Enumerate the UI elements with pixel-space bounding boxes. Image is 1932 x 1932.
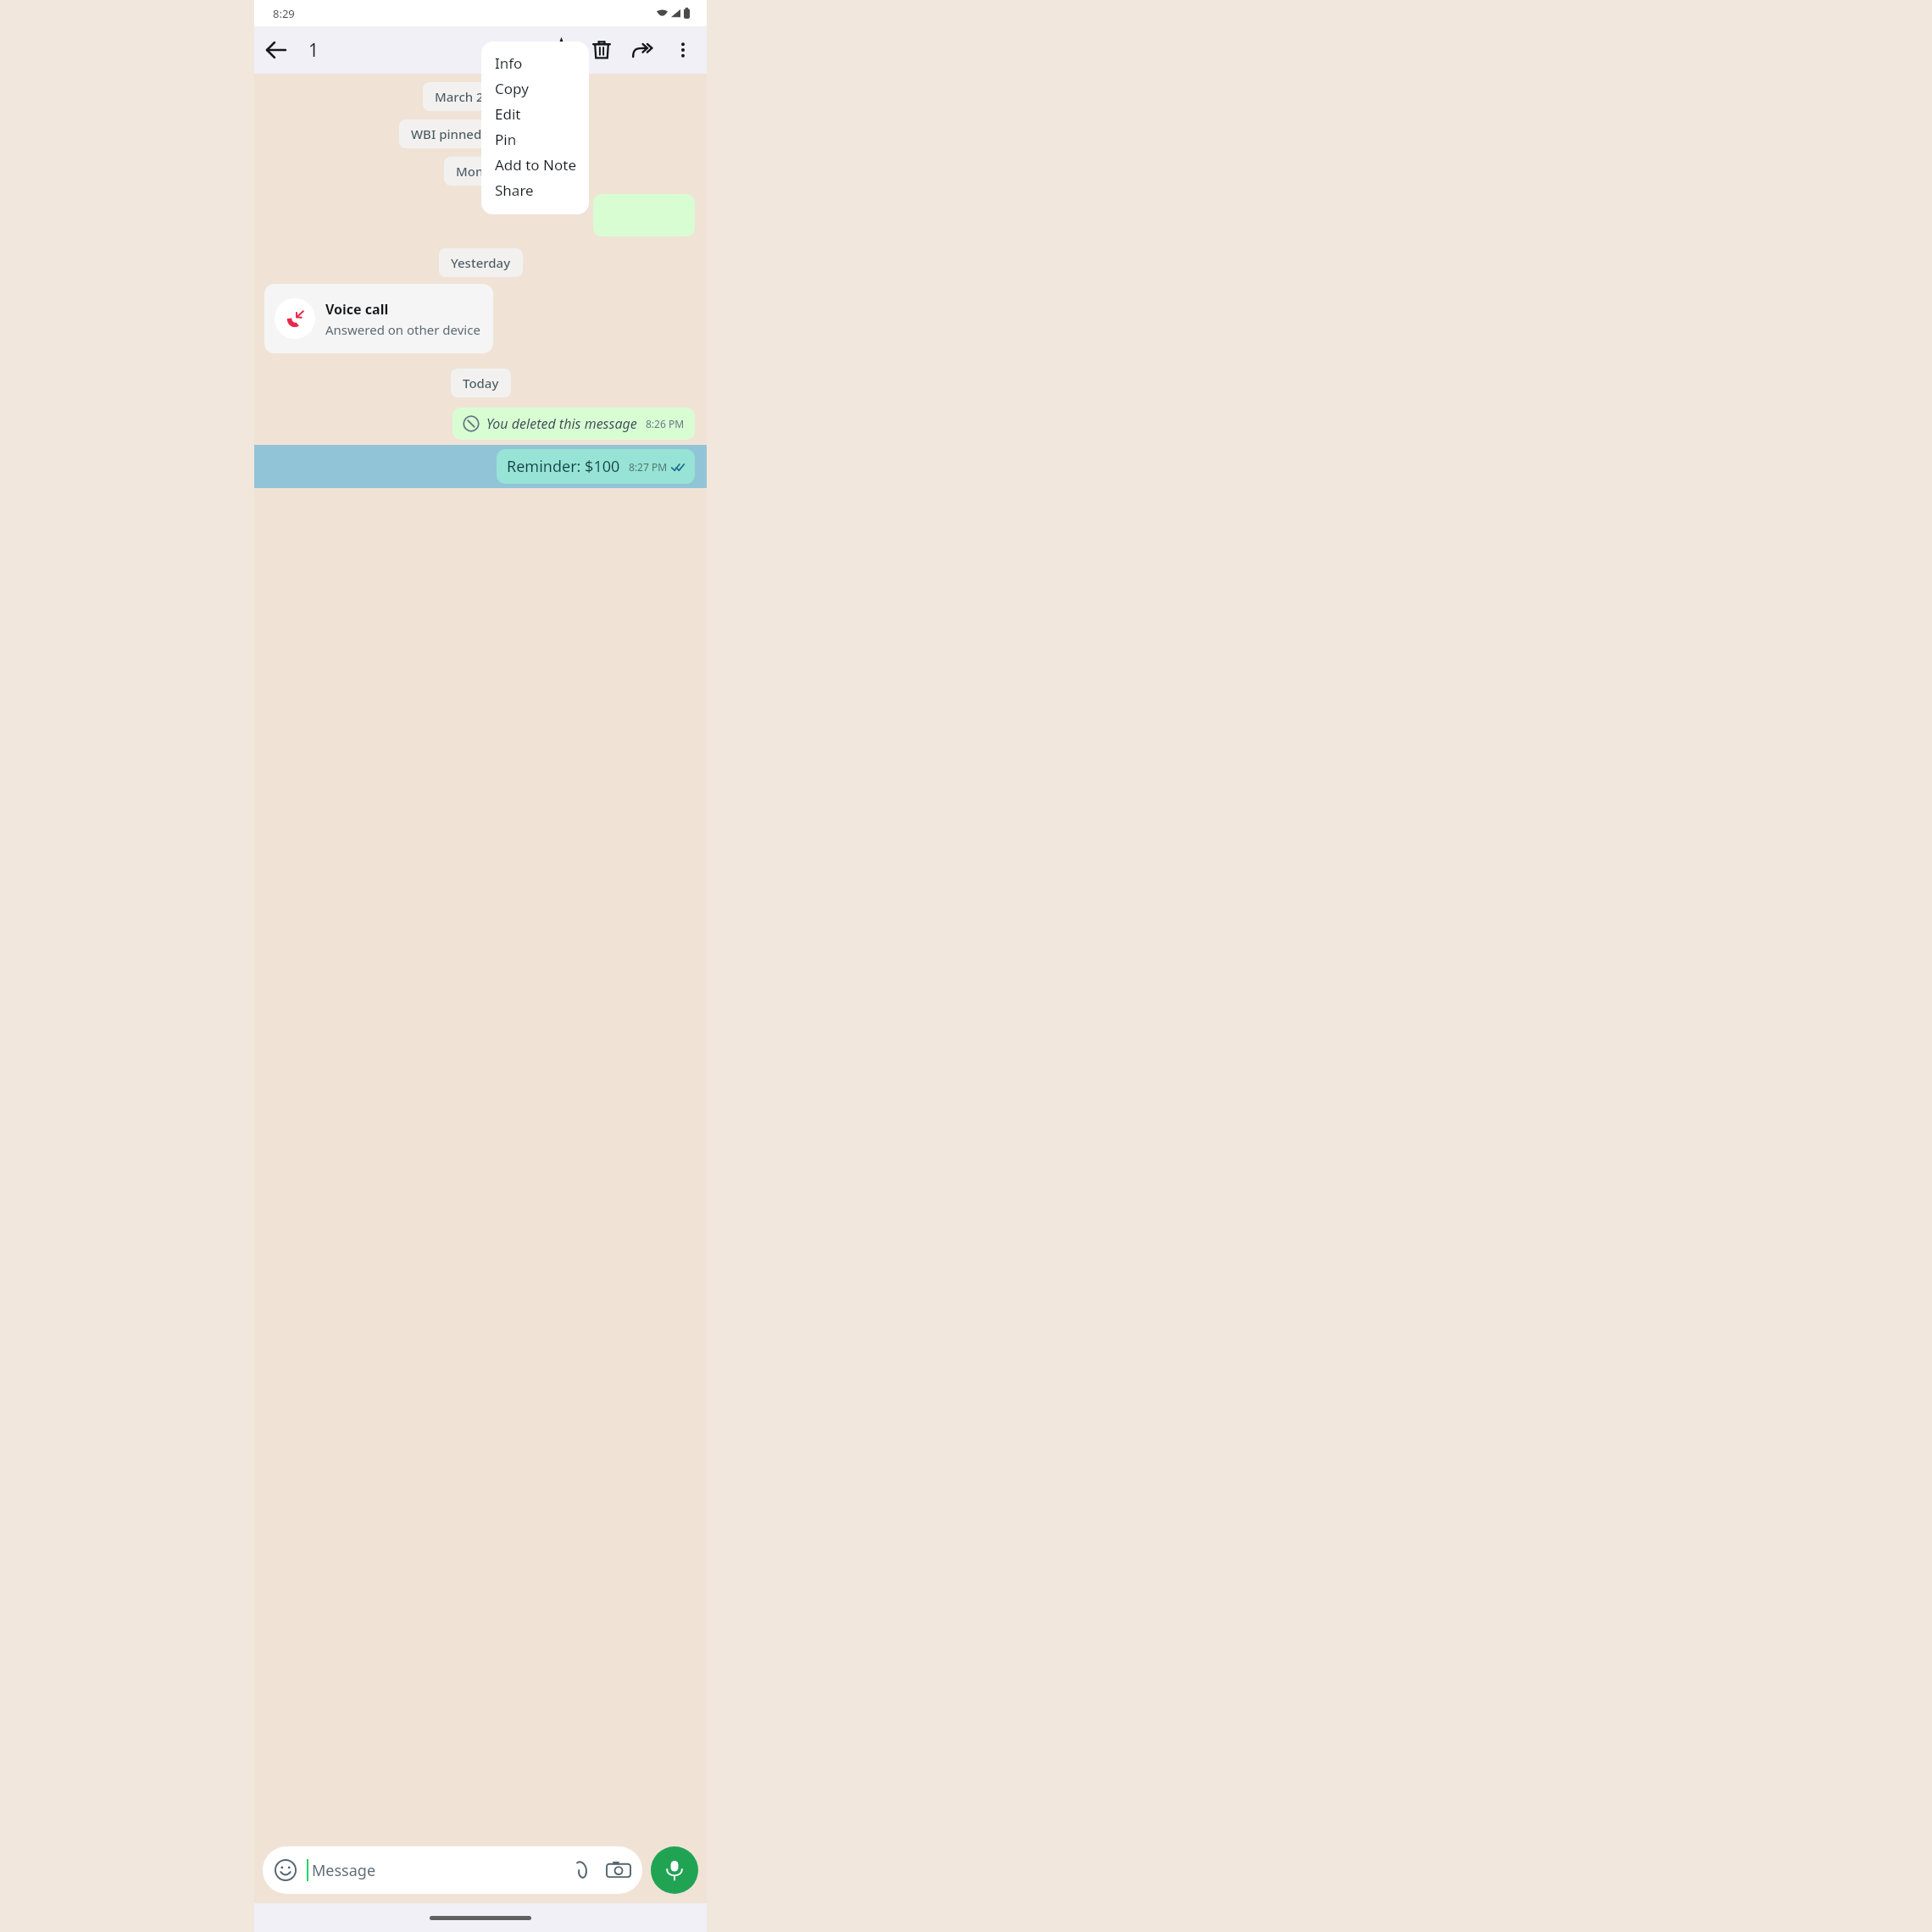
staticText: Info bbox=[495, 53, 523, 73]
button[interactable]: Message bbox=[263, 1846, 642, 1894]
button[interactable]: Share bbox=[481, 177, 589, 203]
button[interactable]: Pin bbox=[481, 126, 589, 152]
staticText: Add to Note bbox=[495, 155, 576, 175]
other: Attach bbox=[571, 1859, 593, 1881]
button[interactable]: More options bbox=[663, 30, 703, 70]
staticText: Answered on other device bbox=[325, 321, 480, 338]
button[interactable]: Delete bbox=[581, 30, 622, 70]
staticText: 8:29 bbox=[273, 6, 295, 21]
staticText: WBI pinned a message bbox=[411, 125, 550, 142]
staticText: March 24, 2025 bbox=[435, 88, 527, 105]
button[interactable]: Star bbox=[541, 30, 581, 70]
staticText: Reminder: $100 bbox=[507, 456, 620, 477]
staticText: Voice call bbox=[325, 300, 389, 319]
other: Camera bbox=[607, 1858, 630, 1882]
button[interactable]: Back bbox=[254, 28, 298, 72]
staticText: 8:27 PM bbox=[629, 460, 668, 474]
staticText: Share bbox=[495, 180, 534, 200]
staticText: Edit bbox=[495, 104, 521, 124]
button[interactable]: Copy bbox=[481, 75, 589, 101]
staticText: 1 bbox=[308, 38, 319, 63]
button[interactable]: Forward bbox=[622, 30, 663, 70]
staticText: 8:26 PM bbox=[646, 417, 685, 430]
button[interactable]: Info bbox=[481, 50, 589, 75]
button[interactable]: Add to Note bbox=[481, 152, 589, 177]
staticText: You deleted this message bbox=[486, 414, 637, 433]
staticText: Copy bbox=[495, 79, 529, 98]
button[interactable]: Edit bbox=[481, 101, 589, 126]
staticText: Today bbox=[463, 375, 499, 391]
staticText: Monday bbox=[456, 163, 506, 180]
staticText: Message bbox=[312, 1860, 376, 1881]
button[interactable]: Reply bbox=[500, 30, 541, 70]
staticText: Pin bbox=[495, 130, 517, 149]
staticText: Yesterday bbox=[451, 254, 511, 271]
button[interactable]: Voice message bbox=[651, 1846, 698, 1894]
